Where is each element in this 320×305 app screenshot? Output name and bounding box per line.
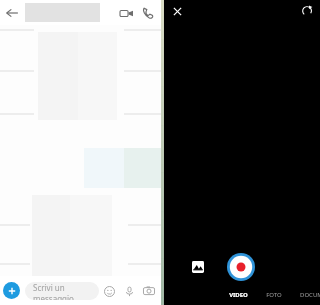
button[interactable]: VIDEO [228,290,249,300]
staticText: DOCUMENTI [300,291,320,299]
button[interactable]: Attach [3,282,20,299]
button[interactable]: Scrivi un messaggio [25,282,99,300]
button[interactable]: Voice message [119,281,139,301]
button[interactable] [32,195,112,295]
button[interactable]: Back [0,1,24,25]
staticText: FOTO [266,291,282,299]
button[interactable]: Close [166,0,188,22]
button[interactable]: Record video [226,252,256,282]
button[interactable]: FOTO [265,290,283,300]
button[interactable]: Gallery [191,260,204,273]
button[interactable]: Voice call [137,2,159,24]
staticText: VIDEO [229,291,248,299]
button[interactable]: DOCUMENTI [299,290,320,300]
button[interactable]: Switch camera [296,0,318,22]
staticText: Scrivi un messaggio [33,282,99,300]
button[interactable]: Emoji [99,281,119,301]
button[interactable]: Camera [139,281,159,301]
button[interactable]: Video call [115,2,137,24]
